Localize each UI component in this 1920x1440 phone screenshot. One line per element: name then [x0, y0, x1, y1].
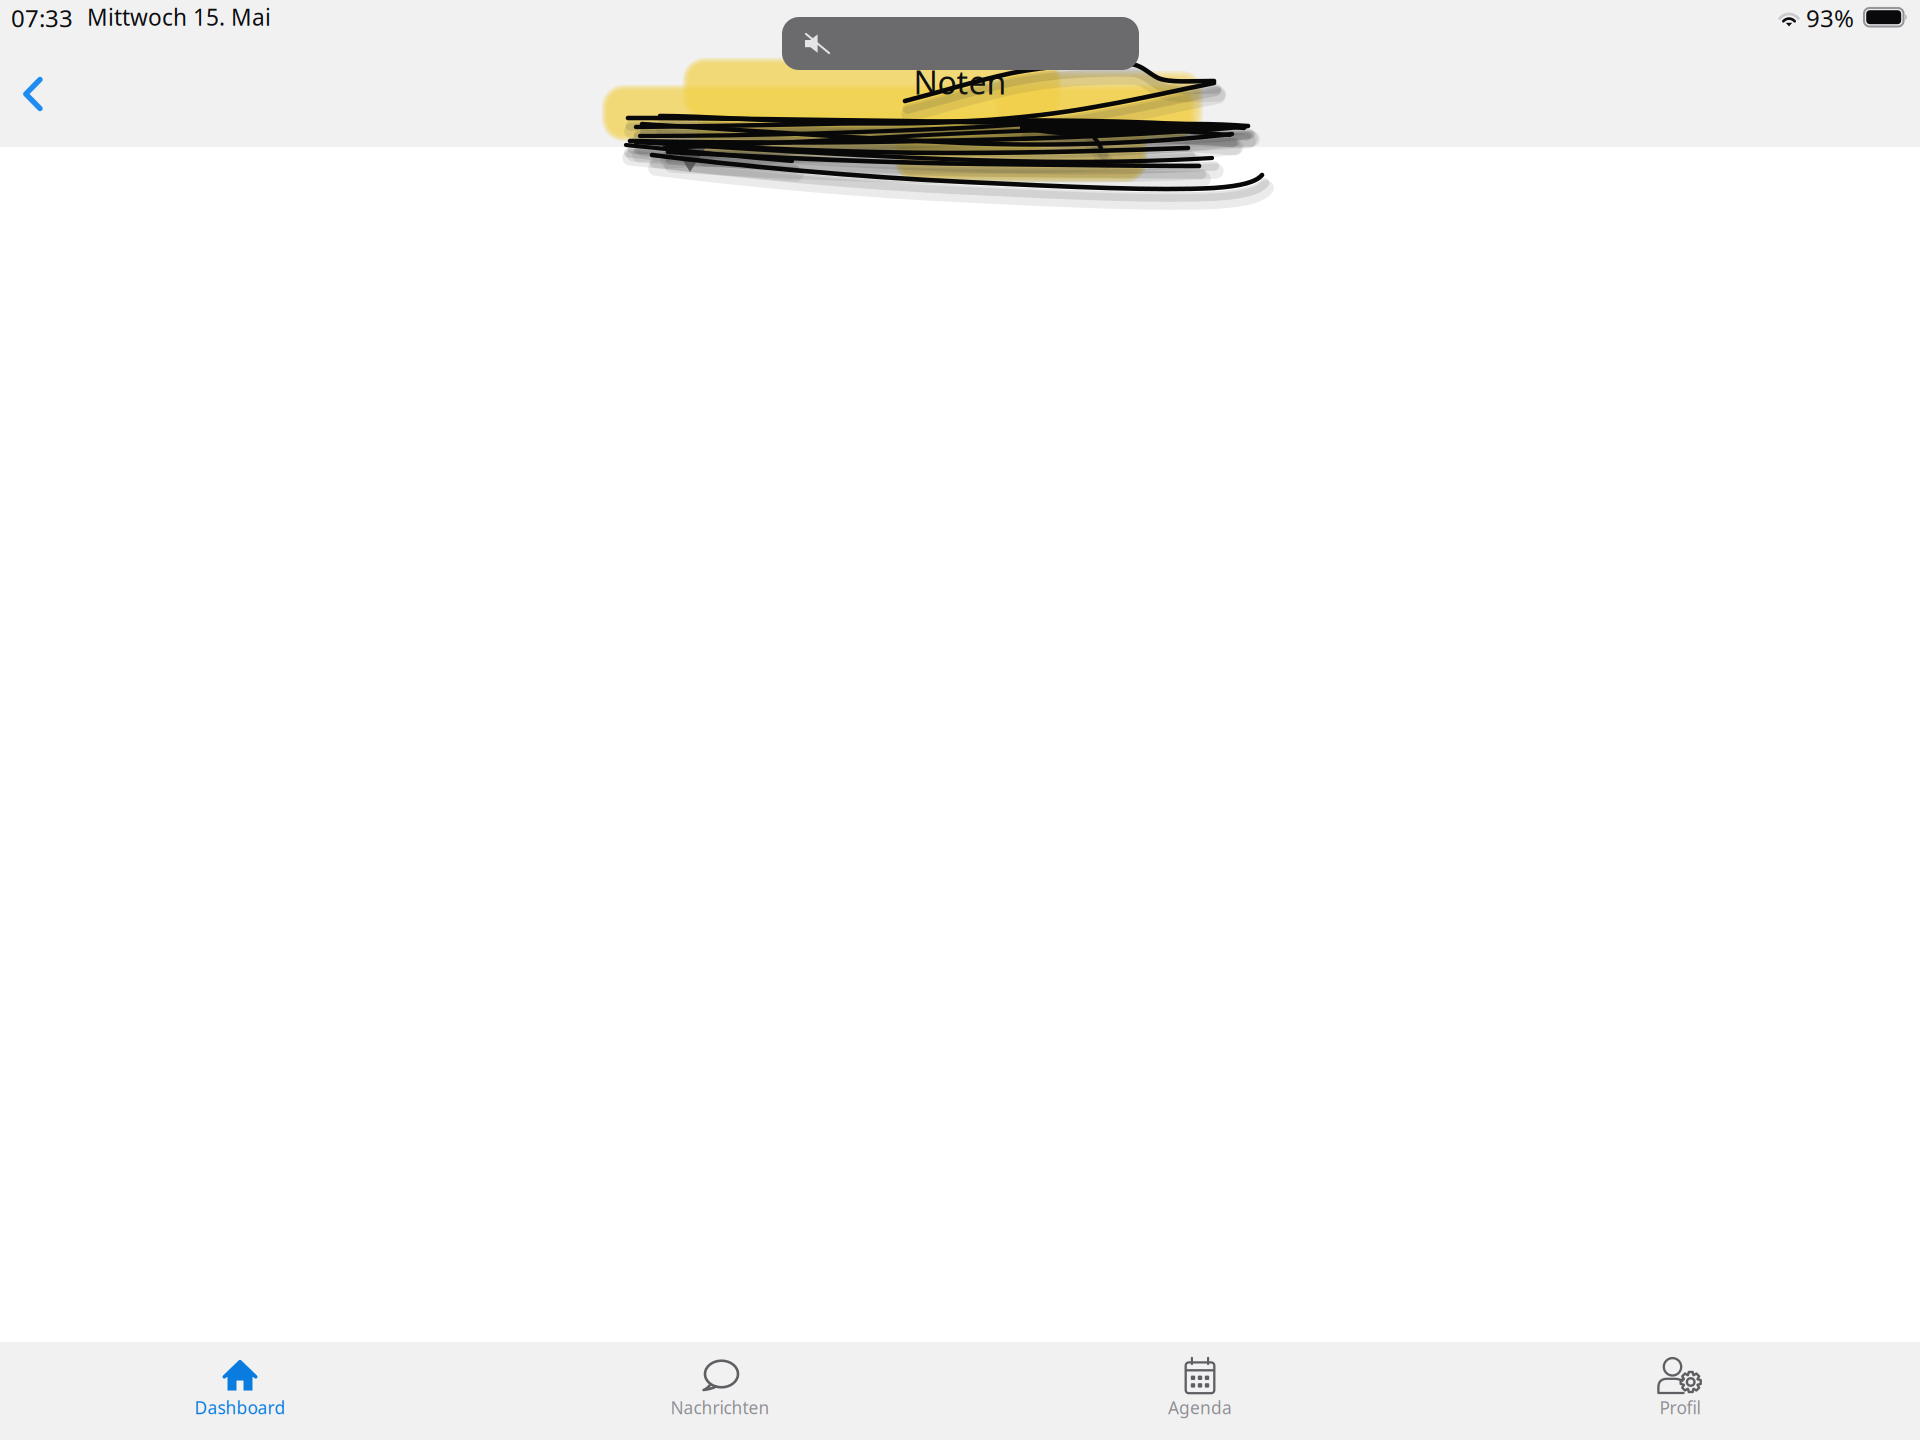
button[interactable]: Profil: [1440, 1342, 1920, 1440]
staticText: 07:33: [11, 2, 73, 34]
button[interactable]: Nachrichten: [480, 1342, 960, 1440]
staticText: Nachrichten: [670, 1396, 769, 1419]
staticText: Noten: [913, 61, 1006, 103]
staticText: Dashboard: [194, 1396, 285, 1419]
staticText: Mittwoch 15. Mai: [87, 2, 271, 32]
button[interactable]: Zurück: [10, 68, 58, 120]
button[interactable]: Dashboard: [0, 1342, 480, 1440]
staticText: Profil: [1659, 1396, 1700, 1419]
staticText: 93%: [1806, 2, 1854, 34]
button[interactable]: Agenda: [960, 1342, 1440, 1440]
staticText: Agenda: [1168, 1396, 1232, 1419]
